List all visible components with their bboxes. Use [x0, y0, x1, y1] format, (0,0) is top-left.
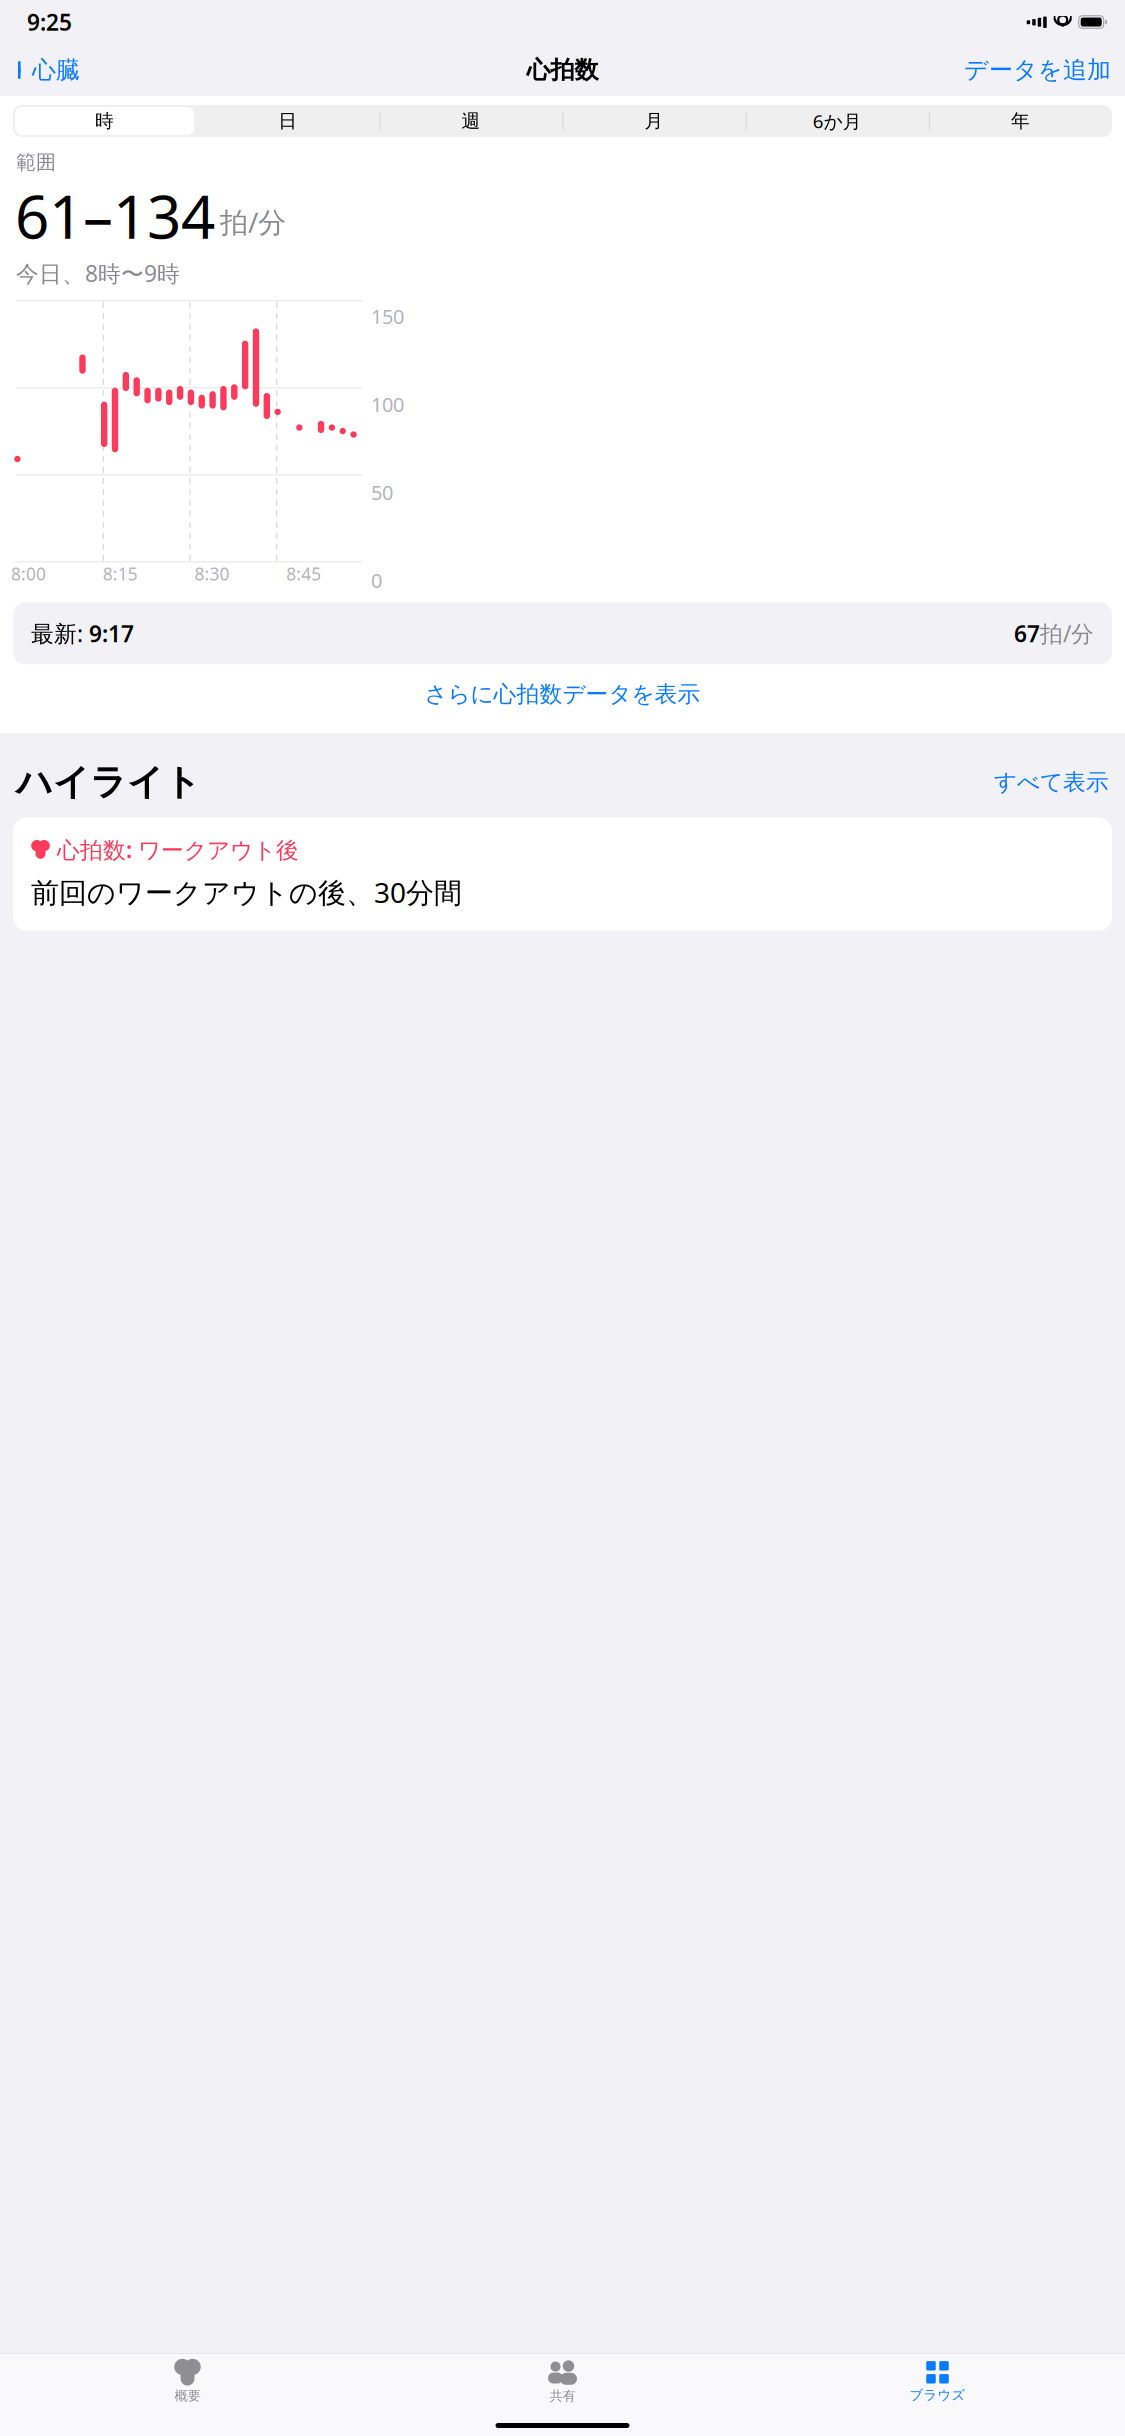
button[interactable]: 6か月: [746, 105, 929, 137]
staticText: 67: [1014, 618, 1040, 648]
staticText: 8:45: [286, 562, 321, 585]
staticText: 心拍数: ワークアウト後: [57, 834, 299, 864]
staticText: 日: [278, 109, 297, 132]
button[interactable]: 年: [929, 105, 1112, 137]
staticText: 8:30: [194, 562, 229, 585]
button[interactable]: 日: [196, 105, 379, 137]
staticText: ハイライト: [16, 760, 201, 804]
button[interactable]: ブラウズ: [750, 2354, 1125, 2403]
staticText: 50: [371, 479, 393, 506]
staticText: データを追加: [964, 55, 1111, 85]
staticText: 心拍数: [526, 55, 598, 85]
staticText: 0: [371, 567, 382, 594]
staticText: 月: [645, 109, 664, 132]
staticText: 共有: [549, 2388, 575, 2404]
staticText: 150: [371, 303, 404, 330]
staticText: さらに心拍数データを表示: [424, 680, 700, 708]
staticText: 拍/分: [1040, 618, 1094, 648]
button[interactable]: 週: [379, 105, 562, 137]
staticText: 8:15: [103, 562, 138, 585]
staticText: 最新:: [31, 618, 83, 648]
staticText: ブラウズ: [909, 2387, 965, 2403]
button[interactable]: 心臓: [0, 47, 90, 93]
staticText: 9:17: [83, 618, 134, 648]
button[interactable]: すべて表示: [986, 763, 1109, 801]
staticText: 年: [1011, 109, 1030, 132]
staticText: 週: [461, 109, 480, 132]
staticText: 今日、8時〜9時: [16, 258, 180, 288]
staticText: 100: [371, 391, 404, 418]
button[interactable]: 概要: [0, 2353, 375, 2404]
staticText: 時: [95, 109, 114, 132]
staticText: 61–134: [15, 176, 215, 255]
button[interactable]: 共有: [375, 2353, 750, 2404]
button[interactable]: 心拍数: ワークアウト後: [13, 817, 1112, 931]
staticText: 前回のワークアウトの後、30分間: [31, 873, 462, 911]
button[interactable]: データを追加: [954, 47, 1125, 93]
staticText: 心臓: [32, 55, 80, 85]
button[interactable]: さらに心拍数データを表示: [0, 667, 1125, 721]
staticText: 8:00: [11, 562, 46, 585]
staticText: 概要: [174, 2388, 200, 2404]
staticText: 拍/分: [220, 203, 286, 240]
staticText: すべて表示: [994, 768, 1109, 796]
staticText: 9:25: [27, 7, 72, 37]
button[interactable]: 時: [13, 105, 196, 137]
staticText: 6か月: [813, 109, 862, 133]
button[interactable]: 月: [562, 105, 746, 137]
staticText: 範囲: [16, 150, 56, 175]
